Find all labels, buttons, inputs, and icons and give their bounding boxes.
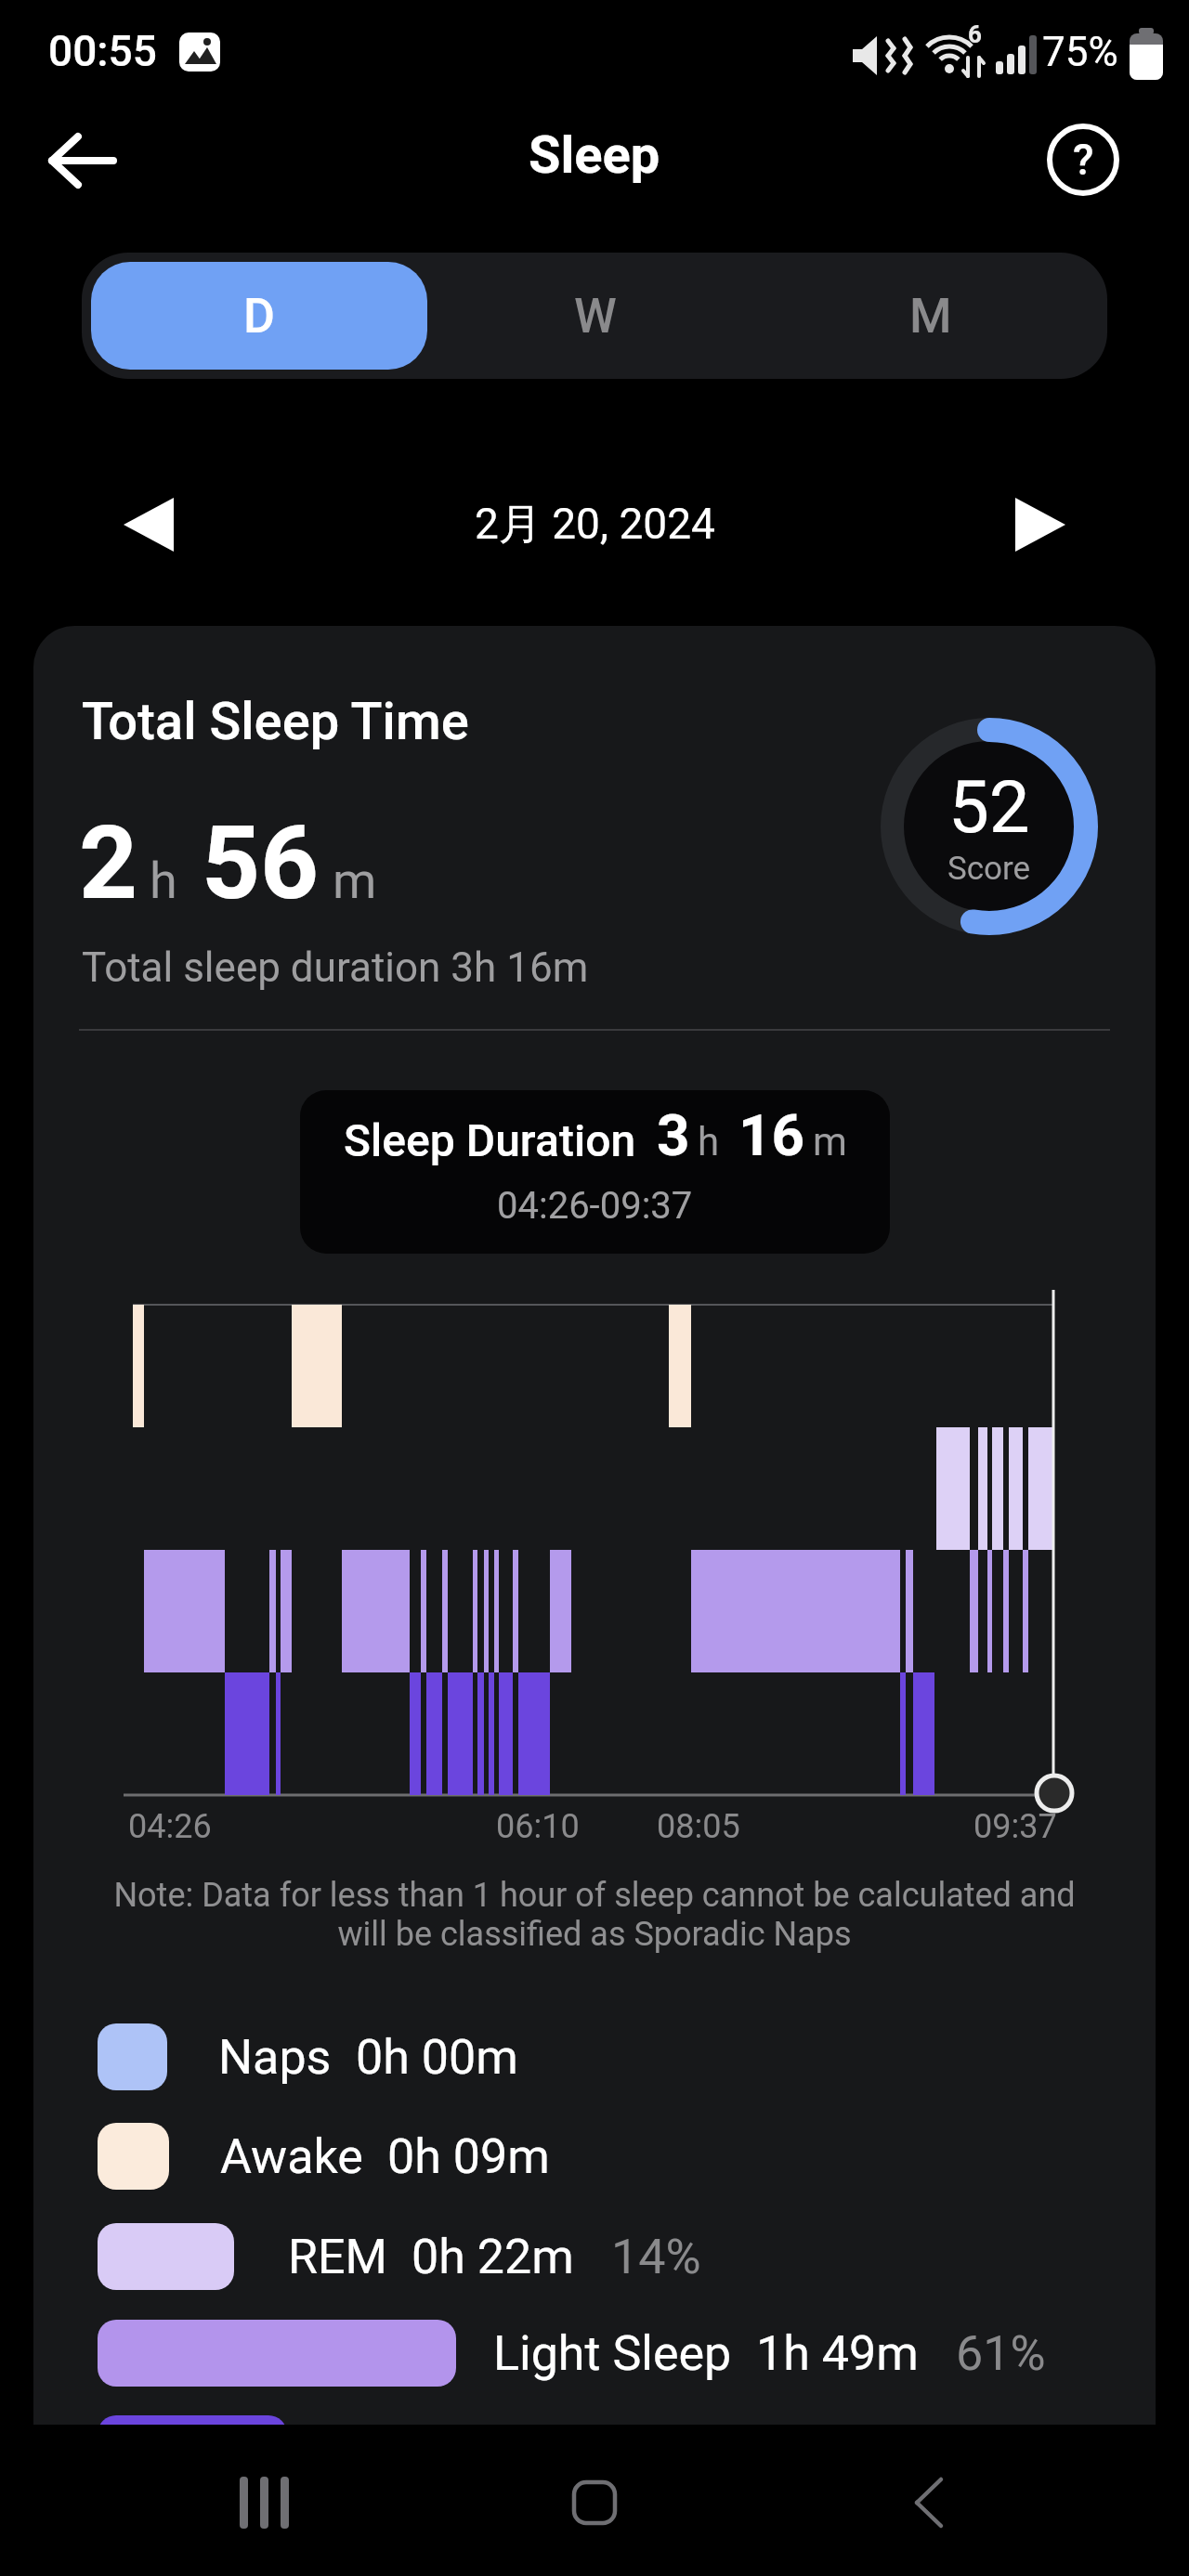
button[interactable] — [93, 469, 204, 580]
button[interactable]: D — [91, 262, 427, 370]
staticText: 14% — [611, 2229, 701, 2285]
staticText: 52 — [948, 765, 1030, 850]
button[interactable]: W — [427, 262, 763, 370]
button[interactable] — [855, 2452, 1003, 2554]
staticText: 09:37 — [973, 1807, 1057, 1846]
staticText: m — [813, 1119, 847, 1164]
staticText: Light Sleep — [493, 2325, 732, 2382]
staticText: 00:55 — [48, 26, 157, 76]
staticText: 2 — [79, 803, 138, 923]
staticText: 3 — [657, 1101, 690, 1169]
staticText: 0h 09m — [387, 2128, 550, 2185]
button[interactable]: M — [763, 262, 1098, 370]
staticText: 0h 00m — [356, 2029, 518, 2086]
button[interactable] — [985, 469, 1096, 580]
staticText: 04:26 — [128, 1807, 212, 1846]
staticText: m — [333, 852, 377, 910]
staticText: 04:26-09:37 — [497, 1184, 693, 1228]
staticText: 2月 20, 2024 — [475, 498, 715, 552]
staticText: Total Sleep Time — [82, 691, 469, 752]
staticText: D — [243, 288, 275, 345]
staticText: Score — [947, 850, 1031, 888]
staticText: 61% — [956, 2325, 1046, 2382]
staticText: Naps — [218, 2029, 332, 2086]
staticText: ? — [1073, 135, 1094, 185]
button[interactable] — [37, 119, 130, 202]
staticText: 75% — [1042, 28, 1118, 76]
button[interactable]: ? — [1039, 115, 1128, 204]
staticText: 0h 22m — [412, 2229, 574, 2285]
staticText: 06:10 — [496, 1807, 580, 1846]
staticText: Sleep — [529, 124, 660, 186]
button[interactable] — [520, 2452, 669, 2554]
staticText: Total sleep duration 3h 16m — [82, 943, 589, 992]
staticText: h — [698, 1119, 720, 1164]
staticText: 16 — [738, 1101, 805, 1169]
staticText: W — [574, 288, 617, 345]
staticText: M — [909, 288, 952, 345]
button[interactable] — [190, 2452, 339, 2554]
staticText: 1h 49m — [756, 2325, 919, 2382]
staticText: 08:05 — [657, 1807, 740, 1846]
staticText: REM — [288, 2229, 387, 2285]
staticText: 6 — [968, 20, 982, 48]
staticText: Note: Data for less than 1 hour of sleep… — [113, 1876, 1076, 1954]
staticText: Awake — [220, 2128, 363, 2185]
staticText: 56 — [202, 803, 320, 923]
staticText: h — [150, 852, 177, 910]
staticText: Sleep Duration — [344, 1114, 636, 1166]
